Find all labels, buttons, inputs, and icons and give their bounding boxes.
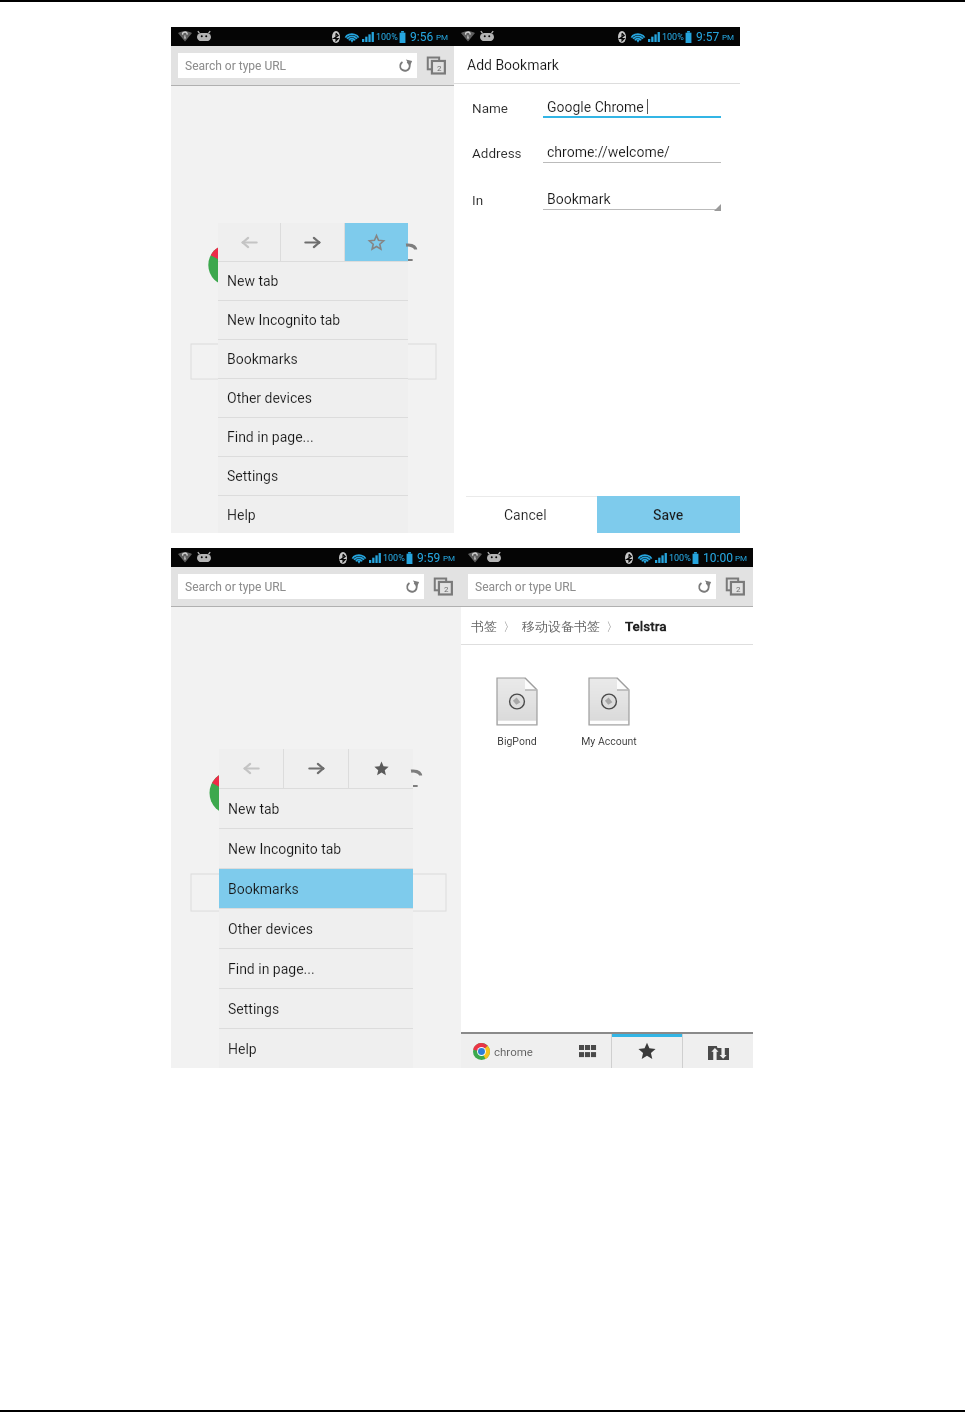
staticText: Cancel (504, 507, 547, 523)
staticText: 9:56 (410, 30, 434, 44)
staticText: 10:00 (703, 551, 733, 565)
button[interactable]: Search or type URL (178, 53, 417, 78)
staticText: Help (228, 1041, 257, 1057)
staticText: Google Chrome (547, 99, 644, 115)
button[interactable]: Help (219, 1029, 413, 1068)
staticText: 100% (662, 32, 684, 43)
staticText: 书签 (471, 618, 497, 634)
button[interactable]: Help (218, 496, 408, 533)
button[interactable]: Other devices (218, 379, 408, 417)
button[interactable]: Tabs (432, 575, 455, 598)
button[interactable]: New Incognito tab (218, 301, 408, 339)
staticText: Bookmarks (227, 351, 298, 367)
staticText: Other devices (227, 390, 312, 406)
button[interactable]: Back (218, 223, 280, 261)
staticText: 〉 (497, 618, 522, 634)
button[interactable]: Cancel (454, 497, 597, 533)
staticText: 100% (376, 32, 398, 43)
staticText: Add Bookmark (467, 57, 559, 73)
staticText: chrome (494, 1045, 533, 1058)
button[interactable]: New tab (218, 262, 408, 300)
button[interactable]: Forward (284, 749, 348, 788)
button[interactable]: Back (219, 749, 283, 788)
button[interactable]: Forward (281, 223, 344, 261)
staticText: My Account (581, 735, 637, 747)
button[interactable]: Search or type URL (468, 574, 716, 599)
button[interactable]: Settings (218, 457, 408, 495)
staticText: Settings (227, 468, 279, 484)
button[interactable]: chrome (461, 1034, 563, 1068)
staticText: 2 (444, 585, 449, 594)
staticText: 9:57 (696, 30, 720, 44)
staticText: Help (227, 507, 256, 523)
staticText: PM (722, 33, 735, 42)
button[interactable]: Bookmark this page (349, 749, 413, 788)
staticText: Other devices (228, 921, 313, 937)
button[interactable]: New Incognito tab (219, 829, 413, 868)
staticText: 2 (437, 64, 442, 73)
staticText: 2 (736, 585, 741, 594)
staticText: Find in page... (228, 961, 315, 977)
staticText: PM (735, 554, 748, 563)
staticText: 〉 (600, 618, 625, 634)
staticText: 100% (383, 553, 405, 564)
button[interactable]: Settings (219, 989, 413, 1028)
button[interactable]: Bookmark this page (345, 223, 408, 261)
staticText: Search or type URL (185, 59, 287, 73)
button[interactable]: Find in page... (219, 949, 413, 988)
staticText: Name (472, 100, 508, 116)
button[interactable]: Tabs (425, 54, 448, 77)
staticText: Telstra (625, 618, 667, 634)
staticText: Find in page... (227, 429, 314, 445)
staticText: Search or type URL (185, 580, 287, 594)
staticText: PM (436, 33, 449, 42)
button[interactable]: New tab (219, 789, 413, 828)
staticText: New Incognito tab (227, 312, 341, 328)
button[interactable]: Tabs (724, 575, 747, 598)
button[interactable]: Find in page... (218, 418, 408, 456)
staticText: 移动设备书签 (522, 618, 600, 634)
button[interactable]: Bookmarks (218, 340, 408, 378)
staticText: chrome://welcome/ (547, 144, 670, 160)
button[interactable]: Bookmarks (219, 869, 413, 908)
staticText: Bookmarks (228, 881, 299, 897)
staticText: 100% (669, 553, 691, 564)
button[interactable]: Other devices (219, 909, 413, 948)
button[interactable]: My Account (580, 678, 638, 747)
staticText: In (472, 192, 484, 208)
button[interactable]: Search or type URL (178, 574, 424, 599)
button[interactable]: Bookmarks (612, 1034, 682, 1068)
staticText: Bookmark (547, 191, 611, 207)
staticText: New tab (227, 273, 279, 289)
staticText: BigPond (497, 735, 537, 747)
button[interactable]: Other devices (683, 1034, 753, 1068)
staticText: Save (653, 507, 684, 523)
staticText: Address (472, 145, 522, 161)
staticText: New tab (228, 801, 280, 817)
staticText: New Incognito tab (228, 841, 342, 857)
staticText: Search or type URL (475, 580, 577, 594)
staticText: 9:59 (417, 551, 441, 565)
button[interactable]: BigPond (488, 678, 546, 747)
button[interactable]: Most visited (563, 1034, 611, 1068)
button[interactable]: Save (597, 496, 740, 533)
staticText: Settings (228, 1001, 280, 1017)
staticText: PM (443, 554, 456, 563)
